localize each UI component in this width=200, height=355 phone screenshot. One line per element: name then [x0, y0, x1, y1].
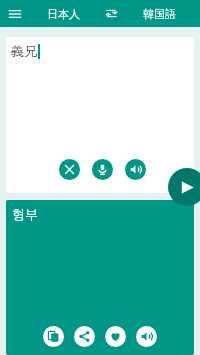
staticText: 義兄 — [11, 43, 37, 59]
button[interactable]: Speak — [136, 326, 157, 347]
button[interactable]: Clear — [59, 159, 80, 180]
button[interactable]: 韓国語 — [126, 0, 192, 27]
button[interactable]: 日本人 — [30, 0, 96, 27]
staticText: 日本人 — [47, 7, 80, 21]
button[interactable]: Swap languages — [96, 0, 126, 27]
button[interactable]: Voice input — [92, 159, 113, 180]
button[interactable]: Copy — [43, 326, 64, 347]
button[interactable]: Speak — [125, 159, 146, 180]
staticText: 韓国語 — [143, 7, 176, 21]
button[interactable]: Translate — [168, 168, 200, 206]
button[interactable]: 형부 — [12, 206, 38, 222]
button[interactable]: Share — [74, 326, 95, 347]
button[interactable]: Menu — [0, 0, 30, 27]
button[interactable]: Favorite — [105, 326, 126, 347]
button[interactable]: 義兄 — [11, 43, 40, 59]
